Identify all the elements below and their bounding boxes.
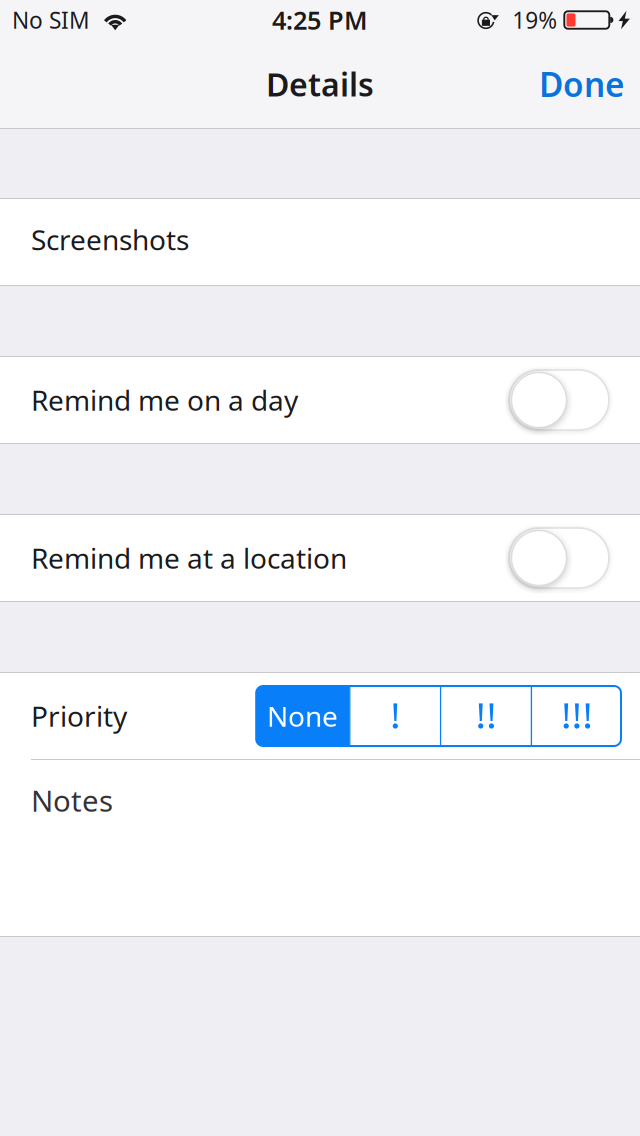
staticText: Remind me at a location — [31, 539, 347, 577]
button[interactable]: Screenshots — [0, 199, 640, 285]
staticText: Details — [266, 63, 374, 105]
button[interactable]: Notes — [0, 759, 640, 936]
staticText: 19% — [512, 5, 557, 35]
staticText: Remind me on a day — [31, 381, 298, 419]
button[interactable]: Done — [524, 40, 640, 128]
staticText: None — [267, 697, 338, 735]
staticText: Priority — [31, 697, 127, 735]
staticText: Done — [539, 62, 625, 106]
button[interactable]: Medium priority — [441, 686, 531, 746]
button[interactable]: Remind me on a day, off — [509, 370, 609, 430]
button[interactable]: None — [256, 686, 349, 746]
button[interactable]: Remind me at a location, off — [509, 528, 609, 588]
button[interactable]: High priority — [532, 686, 621, 746]
staticText: No SIM — [12, 5, 90, 35]
staticText: Notes — [31, 781, 113, 820]
staticText: 4:25 PM — [272, 3, 368, 37]
button[interactable]: Low priority — [351, 686, 440, 746]
staticText: Screenshots — [31, 221, 189, 258]
